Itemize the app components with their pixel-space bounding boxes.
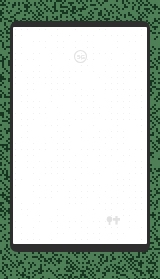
button[interactable]: Device [10,21,150,252]
button[interactable]: 5G network [74,50,87,63]
button[interactable]: Item one [106,216,113,225]
staticText: 5G [77,53,85,61]
button[interactable]: Item two [113,216,120,225]
